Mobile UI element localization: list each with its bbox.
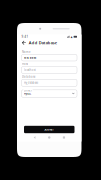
staticText: Driver bbox=[24, 89, 32, 92]
staticText: Test Base bbox=[24, 56, 37, 59]
staticText: Host bbox=[22, 62, 28, 66]
staticText: my_database bbox=[24, 81, 39, 85]
staticText: MySQL bbox=[24, 92, 31, 95]
staticText: SUBMIT bbox=[44, 128, 54, 131]
button[interactable]: Home bbox=[46, 134, 52, 141]
button[interactable]: SUBMIT bbox=[24, 126, 74, 133]
button[interactable]: Recent apps bbox=[61, 134, 67, 141]
button[interactable]: Back bbox=[31, 134, 38, 141]
staticText: Add Database bbox=[29, 40, 57, 45]
button[interactable]: Back bbox=[21, 40, 26, 45]
button[interactable]: MySQL bbox=[21, 90, 77, 97]
staticText: localhost bbox=[24, 68, 36, 72]
staticText: Database bbox=[22, 75, 36, 78]
staticText: Name bbox=[22, 50, 31, 54]
staticText: 9:41 bbox=[21, 35, 28, 38]
staticText: ▲ bbox=[70, 35, 72, 38]
